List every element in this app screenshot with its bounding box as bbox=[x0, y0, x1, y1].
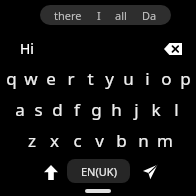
button[interactable]: Send bbox=[137, 159, 163, 185]
button[interactable]: p bbox=[176, 62, 195, 94]
button[interactable]: j bbox=[126, 94, 146, 125]
staticText: Hi bbox=[20, 39, 34, 58]
staticText: e bbox=[46, 67, 56, 90]
staticText: w bbox=[24, 67, 38, 90]
staticText: t bbox=[87, 67, 94, 90]
button[interactable]: there bbox=[40, 5, 171, 25]
button[interactable]: k bbox=[146, 94, 166, 125]
staticText: a bbox=[15, 98, 25, 121]
staticText: x bbox=[50, 129, 59, 152]
staticText: b bbox=[116, 129, 127, 152]
button[interactable]: g bbox=[86, 94, 106, 125]
staticText: n bbox=[138, 129, 149, 152]
button[interactable]: e bbox=[41, 62, 61, 94]
staticText: l bbox=[174, 98, 179, 121]
staticText: I bbox=[97, 8, 101, 23]
button[interactable]: v bbox=[88, 125, 110, 155]
staticText: r bbox=[67, 67, 75, 90]
staticText: h bbox=[111, 98, 122, 121]
staticText: j bbox=[134, 98, 139, 121]
button[interactable]: t bbox=[81, 62, 100, 94]
button[interactable]: y bbox=[100, 62, 119, 94]
staticText: z bbox=[28, 129, 36, 152]
staticText: c bbox=[73, 129, 82, 152]
button[interactable]: i bbox=[138, 62, 157, 94]
button[interactable]: w bbox=[21, 62, 41, 94]
button[interactable]: x bbox=[43, 125, 66, 155]
staticText: f bbox=[74, 98, 80, 121]
button[interactable]: c bbox=[66, 125, 88, 155]
button[interactable]: EN(UK) bbox=[67, 159, 130, 183]
staticText: all bbox=[115, 8, 127, 23]
staticText: p bbox=[180, 67, 191, 90]
staticText: o bbox=[161, 67, 172, 90]
staticText: there bbox=[54, 8, 82, 23]
button[interactable]: a bbox=[10, 94, 29, 125]
staticText: s bbox=[34, 98, 43, 121]
staticText: g bbox=[91, 98, 102, 121]
staticText: q bbox=[6, 67, 17, 90]
button[interactable]: u bbox=[119, 62, 138, 94]
button[interactable]: z bbox=[20, 125, 43, 155]
staticText: k bbox=[151, 98, 161, 121]
button[interactable]: n bbox=[132, 125, 154, 155]
button[interactable]: l bbox=[166, 94, 186, 125]
button[interactable]: b bbox=[110, 125, 132, 155]
button[interactable]: r bbox=[61, 62, 81, 94]
staticText: v bbox=[95, 129, 104, 152]
staticText: EN(UK) bbox=[81, 164, 117, 179]
button[interactable]: o bbox=[157, 62, 176, 94]
staticText: i bbox=[145, 67, 150, 90]
staticText: d bbox=[52, 98, 63, 121]
button[interactable]: q bbox=[1, 62, 21, 94]
button[interactable]: s bbox=[29, 94, 48, 125]
staticText: y bbox=[105, 67, 114, 90]
staticText: m bbox=[157, 129, 173, 152]
button[interactable]: d bbox=[48, 94, 67, 125]
button[interactable]: f bbox=[67, 94, 86, 125]
staticText: u bbox=[123, 67, 134, 90]
button[interactable]: h bbox=[106, 94, 126, 125]
staticText: Da bbox=[142, 8, 157, 23]
button[interactable]: Shift bbox=[38, 159, 64, 185]
button[interactable]: m bbox=[154, 125, 176, 155]
button[interactable]: Backspace bbox=[162, 38, 184, 60]
